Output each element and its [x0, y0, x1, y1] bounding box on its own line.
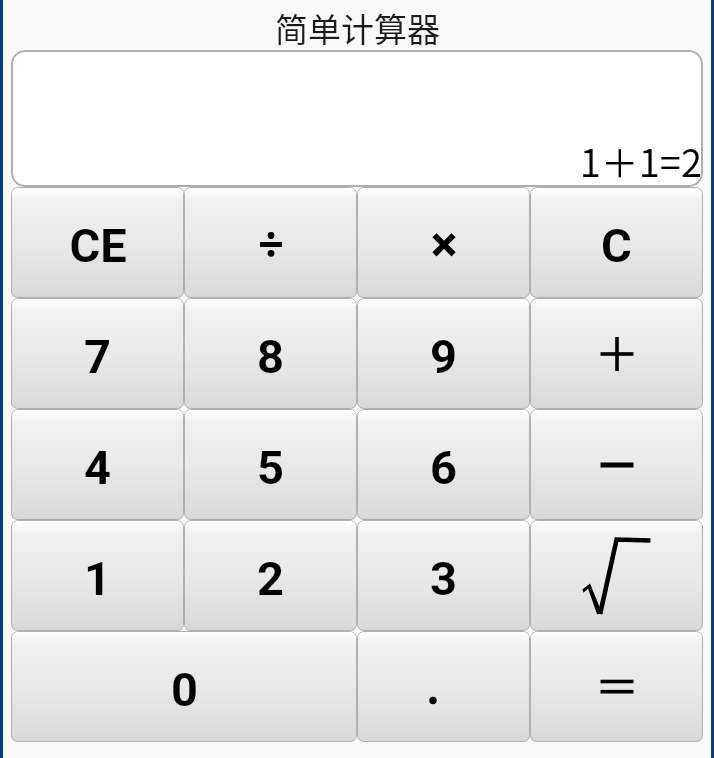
button[interactable]: 3	[357, 520, 530, 631]
staticText: 简单计算器	[275, 4, 440, 50]
button[interactable]: 9	[357, 298, 530, 409]
button[interactable]: 8	[184, 298, 357, 409]
staticText: 4	[84, 440, 111, 495]
staticText: 5	[257, 440, 284, 495]
button[interactable]: Equals	[530, 631, 703, 742]
button[interactable]: Decimal point	[357, 631, 530, 742]
staticText: 9	[430, 329, 457, 384]
button[interactable]: 7	[11, 298, 184, 409]
staticText: 7	[84, 329, 111, 384]
staticText: 3	[430, 551, 457, 606]
staticText: 0	[171, 662, 198, 717]
staticText: 6	[430, 440, 457, 495]
button[interactable]: CE	[11, 187, 184, 298]
button[interactable]: 1	[11, 520, 184, 631]
button[interactable]: Plus	[530, 298, 703, 409]
staticText: 2	[257, 551, 284, 606]
button[interactable]: C	[530, 187, 703, 298]
staticText: CE	[69, 218, 127, 273]
button[interactable]: 4	[11, 409, 184, 520]
button[interactable]: Square root	[530, 520, 703, 631]
staticText: 1＋1=2	[579, 133, 702, 187]
button[interactable]: Divide	[184, 187, 357, 298]
staticText: C	[601, 218, 632, 273]
button[interactable]: Minus	[530, 409, 703, 520]
button[interactable]: 6	[357, 409, 530, 520]
button[interactable]: 0	[11, 631, 357, 742]
button[interactable]: 5	[184, 409, 357, 520]
button[interactable]: 2	[184, 520, 357, 631]
button[interactable]: Multiply	[357, 187, 530, 298]
staticText: 8	[257, 329, 284, 384]
staticText: 1	[84, 551, 111, 606]
